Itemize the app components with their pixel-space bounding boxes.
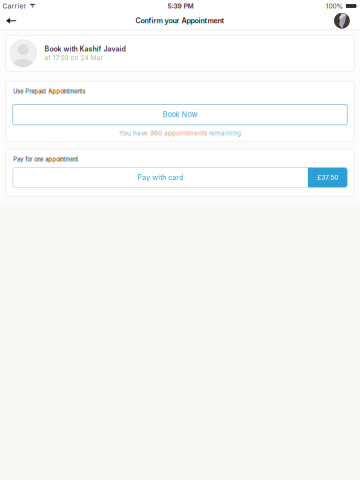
button[interactable]: Pay with card <box>13 167 347 187</box>
staticText: Pay with card <box>137 173 183 182</box>
button[interactable]: Profile <box>326 12 360 29</box>
staticText: Book Now <box>162 110 197 119</box>
button[interactable]: Back <box>0 13 24 29</box>
staticText: at 17:50 on 24 Mar <box>45 54 103 62</box>
staticText: 100% <box>325 2 343 10</box>
staticText: Use Prepaid Appointments <box>13 88 85 95</box>
staticText: Confirm your Appointment <box>135 16 224 25</box>
staticText: Pay for one appointment <box>13 156 78 163</box>
staticText: £37.50 <box>317 173 338 181</box>
staticText: Carrier <box>3 2 27 10</box>
button[interactable]: Book Now <box>13 104 347 125</box>
staticText: You have 980 appointments remaining <box>119 129 241 137</box>
staticText: 5:39 PM <box>167 2 193 10</box>
staticText: Book with Kashif Javaid <box>45 45 126 53</box>
